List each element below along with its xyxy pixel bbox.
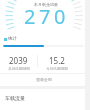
staticText: 15.2 [49,55,65,66]
staticText: 统计 [8,36,17,42]
staticText: 本月剩余流量 [34,2,58,7]
staticText: 2039 [9,55,28,66]
staticText: 查看全部 [36,77,52,82]
button[interactable]: 2039 [0,55,37,71]
staticText: 270 [24,3,69,30]
staticText: 车载流量 [5,95,25,101]
button[interactable]: 查看全部 [0,74,87,84]
staticText: 今日已用(MB) [46,66,68,71]
button[interactable]: 15.2 [38,55,76,71]
button[interactable]: 车载流量 [5,89,90,107]
staticText: 本月已用(MB) [8,66,30,71]
